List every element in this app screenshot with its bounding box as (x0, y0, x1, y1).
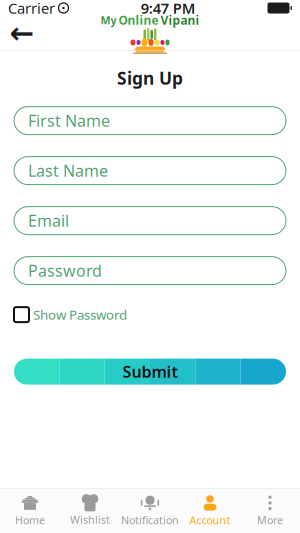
button[interactable]: Back (4, 18, 40, 48)
staticText: 9:47 PM (141, 0, 196, 18)
staticText: Show Password (33, 306, 127, 323)
staticText: More (257, 513, 283, 527)
button[interactable]: Show Password (14, 305, 286, 325)
button[interactable]: Email (14, 207, 286, 235)
button[interactable]: Home (0, 490, 60, 532)
staticText: My (100, 13, 116, 27)
staticText: Sign Up (117, 67, 183, 90)
button[interactable]: Account (180, 490, 240, 532)
button[interactable]: Last Name (14, 157, 286, 185)
staticText: Email (28, 210, 69, 231)
staticText: Online (118, 12, 158, 28)
staticText: Account (189, 513, 230, 527)
button[interactable]: Submit (14, 359, 286, 385)
staticText: Home (15, 513, 45, 527)
staticText: Last Name (28, 160, 108, 181)
button[interactable]: More (240, 490, 300, 532)
staticText: Submit (122, 361, 177, 382)
staticText: ← (9, 16, 34, 50)
staticText: First Name (28, 110, 110, 131)
button[interactable]: Password (14, 257, 286, 285)
staticText: Password (28, 260, 102, 281)
button[interactable]: Wishlist (60, 490, 120, 532)
staticText: Wishlist (70, 512, 110, 527)
button[interactable]: Notification (120, 490, 180, 532)
staticText: Carrier (8, 0, 55, 18)
staticText: Vipani (160, 12, 199, 28)
staticText: Notification (121, 513, 179, 527)
button[interactable]: First Name (14, 107, 286, 135)
